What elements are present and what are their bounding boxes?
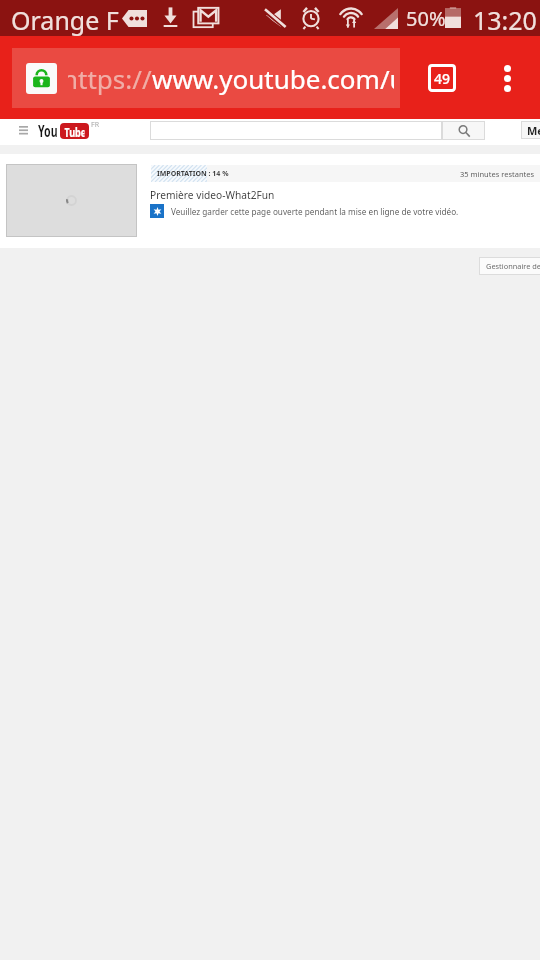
button[interactable] xyxy=(150,121,442,140)
staticText: 13:20 xyxy=(473,3,537,37)
staticText: https:// xyxy=(68,61,152,96)
staticText: Veuillez garder cette page ouverte penda… xyxy=(171,206,459,217)
other: Menu xyxy=(19,126,28,134)
staticText: IMPORTATION : 14 % xyxy=(157,169,229,179)
staticText: 49 xyxy=(434,69,451,88)
button[interactable]: Mettre xyxy=(521,121,540,139)
staticText: www.youtube.com/u xyxy=(152,61,394,96)
staticText: Première video-What2Fun xyxy=(150,188,275,202)
staticText: 50% xyxy=(406,5,446,32)
button[interactable]: Search xyxy=(442,121,485,140)
staticText: You xyxy=(38,120,58,142)
button[interactable]: Tabs xyxy=(428,64,456,92)
button[interactable]: https:// xyxy=(12,48,400,108)
button[interactable]: More options xyxy=(489,60,525,96)
staticText: Tube xyxy=(64,123,85,139)
staticText: Mettre xyxy=(527,123,540,138)
button[interactable]: Gestionnaire de vidéos xyxy=(479,257,540,275)
staticText: Orange F xyxy=(11,3,119,37)
staticText: 35 minutes restantes xyxy=(460,169,535,179)
staticText: FR xyxy=(91,120,99,130)
staticText: Gestionnaire de vidéos xyxy=(486,261,540,271)
